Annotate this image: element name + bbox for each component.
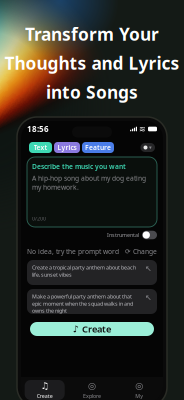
staticText: ♪ xyxy=(73,324,79,334)
staticText: Explore xyxy=(83,392,101,400)
staticText: Describe the music you want xyxy=(32,162,126,171)
button[interactable]: Make a powerful party anthem about that … xyxy=(27,289,157,314)
staticText: Create a tropical party anthem about bea… xyxy=(32,264,136,278)
button[interactable]: ♪ xyxy=(30,322,154,336)
staticText: Change xyxy=(133,247,157,256)
button[interactable]: Text xyxy=(29,142,52,153)
staticText: ↖ xyxy=(145,264,152,273)
staticText: Feature xyxy=(85,143,111,152)
staticText: Create xyxy=(37,392,53,400)
button[interactable]: ⟳ xyxy=(125,247,157,256)
staticText: No idea, try the prompt word xyxy=(27,247,119,256)
staticText: ▾ xyxy=(149,144,152,151)
staticText: into Songs xyxy=(46,80,138,103)
staticText: ◎ xyxy=(88,380,96,391)
button[interactable]: ♫ xyxy=(21,377,68,400)
button[interactable]: ◎ xyxy=(68,377,116,400)
button[interactable]: Create a tropical party anthem about bea… xyxy=(27,260,157,285)
button[interactable]: Model xyxy=(140,143,155,152)
button[interactable]: Feature xyxy=(82,142,114,153)
staticText: Instrumental xyxy=(107,231,139,239)
staticText: Text xyxy=(33,143,47,152)
staticText: My xyxy=(135,392,143,400)
staticText: A hip-hop song about my dog eating my ho… xyxy=(32,174,146,192)
button[interactable]: ◎ xyxy=(116,377,163,400)
staticText: Thoughts and Lyrics xyxy=(4,51,179,74)
staticText: Create xyxy=(82,323,111,335)
staticText: Make a powerful party anthem about that … xyxy=(32,293,133,314)
button[interactable]: Instrumental toggle xyxy=(142,231,157,239)
staticText: 0/200 xyxy=(32,215,46,222)
staticText: Lyrics xyxy=(57,143,76,152)
staticText: ◎ xyxy=(135,380,143,391)
staticText: ♫ xyxy=(41,380,49,391)
staticText: ≋ xyxy=(139,124,146,134)
staticText: 18:56 xyxy=(27,124,49,134)
staticText: ↖ xyxy=(145,293,152,302)
button[interactable]: Lyrics xyxy=(54,142,80,153)
staticText: Transform Your xyxy=(25,22,159,45)
staticText: ⟳ xyxy=(125,248,131,255)
